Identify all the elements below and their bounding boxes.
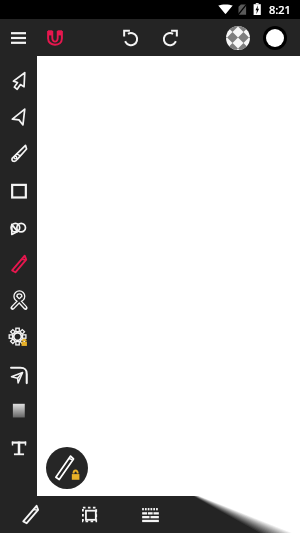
button[interactable]: Menu [4,19,32,56]
button[interactable]: Select [0,69,37,93]
button[interactable]: Shape [0,179,37,203]
button[interactable]: Effects [0,326,37,350]
button[interactable]: Crayon [0,252,37,276]
button[interactable]: Brush settings (locked) [46,447,88,489]
button[interactable]: Symmetry [0,216,37,240]
staticText: 8:21 [269,2,291,17]
button[interactable]: Layers [120,496,180,533]
button[interactable]: Selection [60,496,120,533]
button[interactable]: Color [260,19,290,56]
button[interactable]: Brand [41,19,69,56]
button[interactable]: Opacity [223,19,253,56]
button[interactable]: Brush [0,496,60,533]
button[interactable]: Cut [0,289,37,313]
button[interactable]: Undo [117,19,145,56]
button[interactable]: Text [0,436,37,460]
button[interactable]: Pen [0,142,37,166]
button[interactable]: Transform [0,105,37,129]
button[interactable]: Move [0,363,37,387]
button[interactable]: Gradient [0,399,37,423]
button[interactable]: Redo [156,19,184,56]
